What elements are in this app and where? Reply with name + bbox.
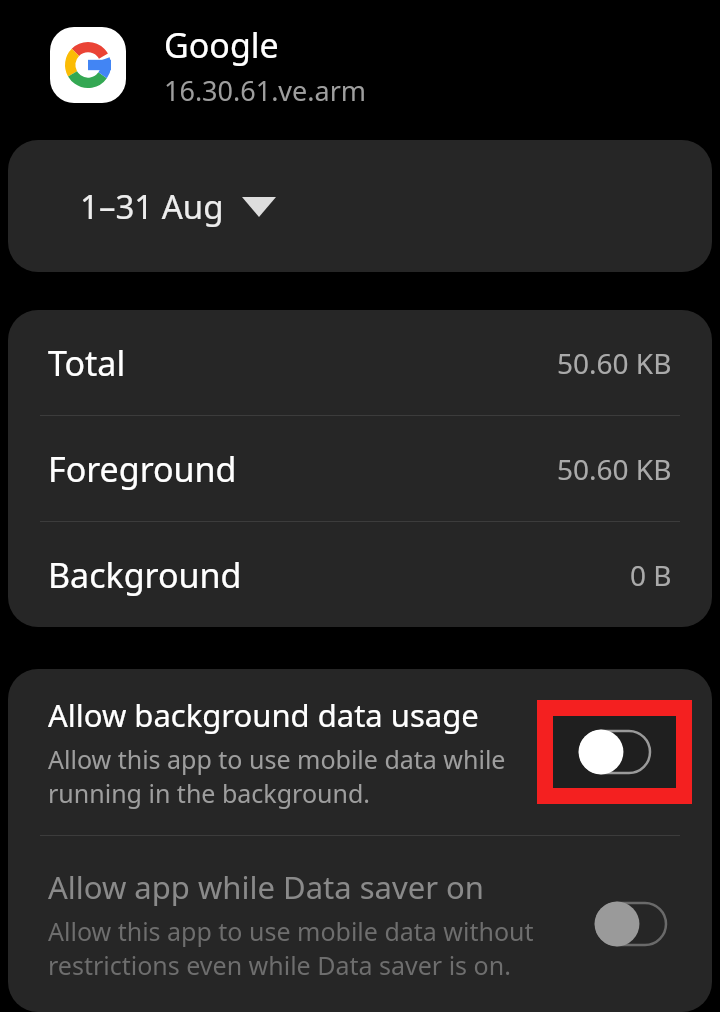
other: Allow background data usage toggle [579, 730, 651, 774]
other: Allow app while Data saver on toggle [595, 902, 667, 946]
staticText: Foreground [48, 446, 237, 492]
button[interactable]: Background [8, 522, 712, 627]
staticText: 16.30.61.ve.arm [164, 72, 367, 109]
button[interactable]: Total [8, 310, 712, 415]
staticText: Google [164, 22, 279, 68]
staticText: Background [48, 552, 242, 598]
button[interactable]: 1–31 Aug [8, 140, 712, 272]
button[interactable]: Allow background data usage [8, 669, 712, 835]
staticText: Total [48, 340, 126, 386]
staticText: Allow app while Data saver on [48, 866, 484, 908]
button[interactable]: Foreground [8, 416, 712, 521]
staticText: 1–31 Aug [80, 184, 224, 229]
staticText: 0 B [630, 556, 672, 594]
staticText: Allow background data usage [48, 694, 479, 736]
staticText: 50.60 KB [557, 450, 672, 488]
staticText: Allow this app to use mobile data withou… [48, 914, 587, 982]
staticText: Allow this app to use mobile data while … [48, 742, 529, 810]
button[interactable]: Allow app while Data saver on [8, 836, 712, 1012]
staticText: 50.60 KB [557, 344, 672, 382]
